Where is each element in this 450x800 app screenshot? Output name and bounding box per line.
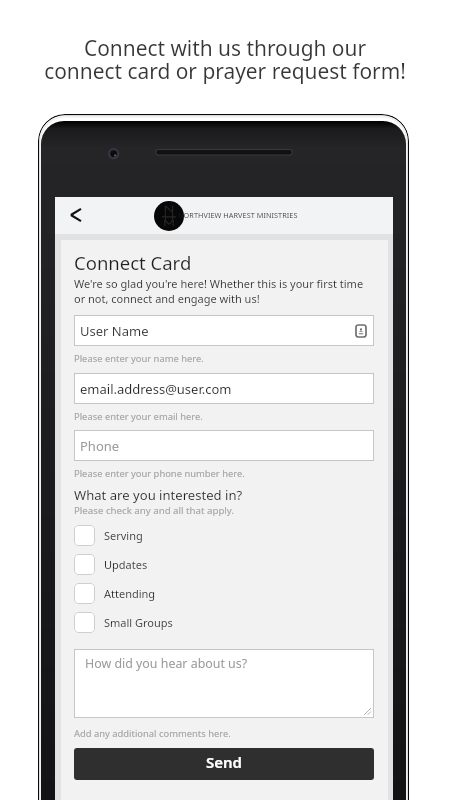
staticText: Please enter your email here. [74, 410, 203, 423]
staticText: Send [206, 752, 242, 772]
staticText: Please enter your phone number here. [74, 467, 245, 480]
button[interactable]: Phone [74, 430, 374, 461]
staticText: We're so glad you're here! Whether this … [74, 276, 374, 306]
staticText: What are you interested in? [74, 486, 243, 504]
staticText: Updates [104, 557, 148, 572]
staticText: email.address@user.com [80, 380, 232, 398]
button[interactable]: Send [74, 748, 374, 780]
staticText: Add any additional comments here. [74, 727, 231, 740]
button[interactable]: Updates [74, 550, 374, 579]
staticText: NORTHVIEW HARVEST MINISTRIES [178, 210, 298, 220]
button[interactable]: How did you hear about us? [74, 649, 374, 718]
button[interactable]: email.address@user.com [74, 373, 374, 404]
staticText: Connect Card [74, 250, 192, 275]
staticText: Please check any and all that apply. [74, 504, 234, 517]
staticText: Serving [104, 528, 143, 543]
button[interactable]: User Name [74, 315, 374, 346]
button[interactable]: Small Groups [74, 608, 374, 637]
button[interactable]: Serving [74, 521, 374, 550]
button[interactable]: Back [60, 200, 90, 230]
staticText: User Name [80, 322, 149, 340]
button[interactable]: Attending [74, 579, 374, 608]
staticText: Connect with us through our connect card… [44, 34, 406, 85]
staticText: Attending [104, 586, 156, 601]
staticText: Please enter your name here. [74, 352, 204, 365]
staticText: Small Groups [104, 615, 173, 630]
staticText: How did you hear about us? [85, 655, 248, 672]
staticText: Phone [80, 437, 120, 455]
